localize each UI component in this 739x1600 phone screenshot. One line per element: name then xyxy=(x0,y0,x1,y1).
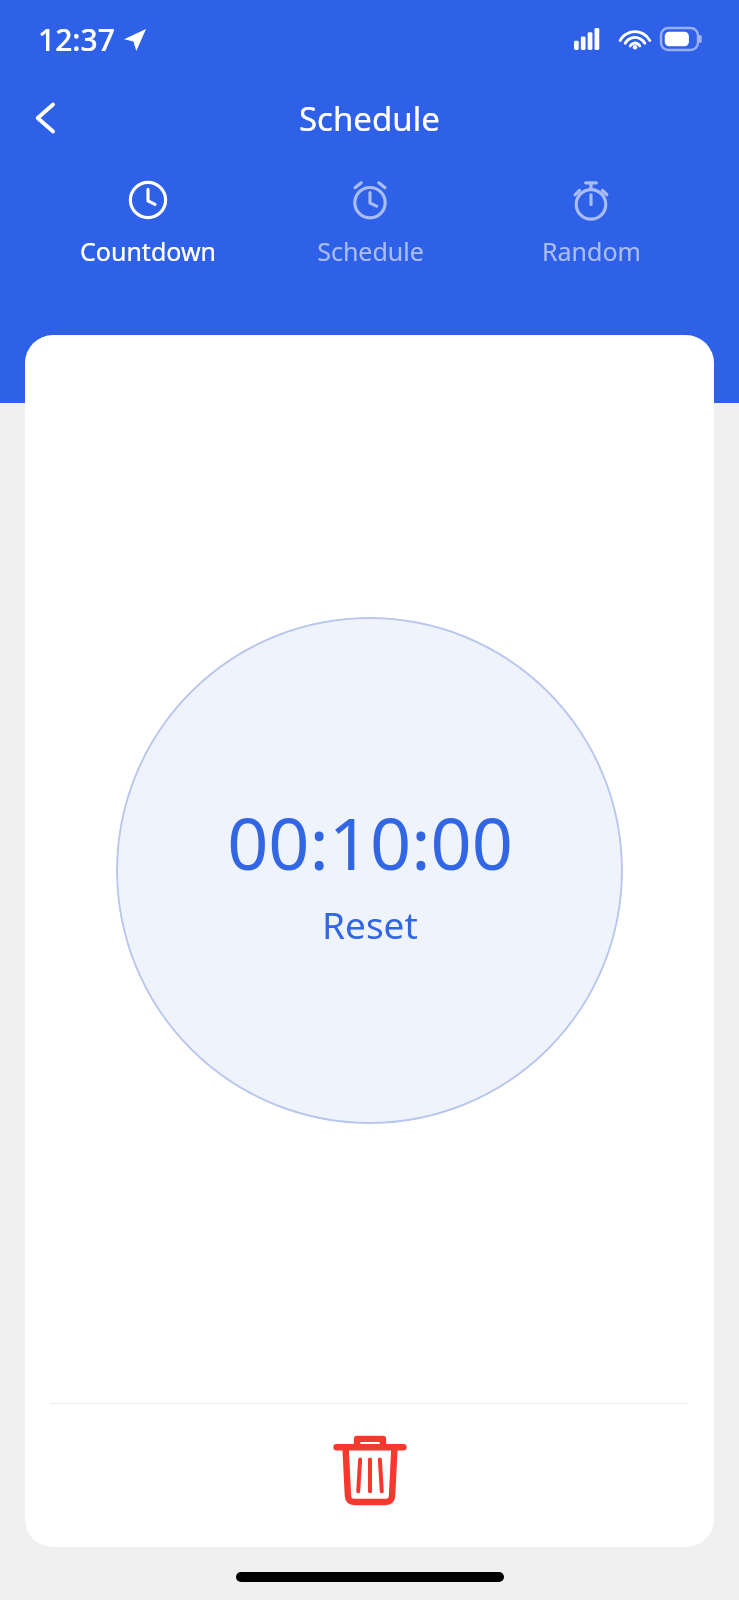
button[interactable]: Schedule xyxy=(275,172,465,274)
staticText: 00:10:00 xyxy=(227,793,513,891)
button[interactable]: Delete xyxy=(332,1429,408,1505)
staticText: 12:37 xyxy=(38,19,115,60)
staticText: Random xyxy=(542,234,641,268)
staticText: Schedule xyxy=(317,234,424,268)
button[interactable]: Back xyxy=(14,86,78,150)
button[interactable]: Random xyxy=(496,172,686,274)
button[interactable]: Countdown xyxy=(53,172,243,274)
staticText: Countdown xyxy=(80,234,216,268)
staticText: Schedule xyxy=(299,96,440,141)
button[interactable]: 00:10:00 xyxy=(116,617,623,1124)
staticText: Reset xyxy=(322,899,418,949)
